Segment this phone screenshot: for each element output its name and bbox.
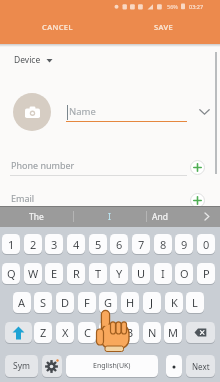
button[interactable]: The [0, 206, 73, 227]
staticText: Name [69, 105, 96, 118]
button[interactable] [190, 193, 205, 208]
button[interactable] [42, 355, 62, 377]
staticText: M [168, 325, 178, 340]
button[interactable]: 3 [45, 234, 63, 254]
button[interactable]: 5 [89, 234, 107, 254]
button[interactable] [8, 185, 188, 209]
button[interactable]: 4 [67, 234, 85, 254]
button[interactable]: Q [2, 263, 20, 284]
staticText: Next [192, 361, 210, 372]
staticText: T [95, 266, 102, 281]
button[interactable]: 7 [132, 234, 150, 254]
staticText: A [18, 295, 26, 310]
button[interactable]: E [45, 263, 63, 284]
button[interactable]: I [73, 206, 146, 227]
staticText: I [108, 211, 111, 223]
staticText: F [84, 295, 90, 310]
staticText: Phone number [11, 159, 75, 171]
staticText: 3 [51, 237, 58, 252]
staticText: And [152, 211, 168, 223]
staticText: U [137, 266, 146, 281]
button[interactable]: 6 [110, 234, 128, 254]
button[interactable]: K [165, 292, 183, 313]
button[interactable]: X [56, 322, 74, 343]
staticText: N [148, 325, 157, 340]
staticText: K [171, 295, 178, 310]
button[interactable]: And [140, 206, 180, 227]
button[interactable]: C [78, 322, 96, 343]
staticText: X [62, 325, 69, 340]
staticText: V [105, 325, 112, 340]
staticText: O [180, 266, 189, 281]
button[interactable] [194, 206, 220, 227]
staticText: E [51, 266, 58, 281]
button[interactable]: Device [14, 53, 74, 67]
button[interactable]: M [164, 322, 182, 343]
staticText: Sym [13, 360, 30, 372]
button[interactable]: Next [186, 355, 215, 377]
button[interactable] [5, 322, 32, 343]
button[interactable]: P [197, 263, 215, 284]
button[interactable]: T [89, 263, 107, 284]
button[interactable]: Z [34, 322, 52, 343]
button[interactable]: H [121, 292, 139, 313]
button[interactable]: N [143, 322, 161, 343]
staticText: W [28, 266, 39, 281]
button[interactable]: U [132, 263, 150, 284]
button[interactable]: I [154, 263, 172, 284]
button[interactable]: B [121, 322, 139, 343]
staticText: 4 [73, 237, 80, 252]
staticText: B [126, 325, 134, 340]
staticText: Device [14, 54, 41, 66]
button[interactable]: 0 [197, 234, 215, 254]
button[interactable]: G [99, 292, 117, 313]
button[interactable] [13, 93, 51, 131]
button[interactable]: 2 [24, 234, 42, 254]
button[interactable]: W [24, 263, 42, 284]
button[interactable] [60, 98, 190, 124]
staticText: Y [116, 266, 123, 281]
button[interactable]: English(UK) [66, 355, 158, 377]
staticText: 56% [167, 3, 178, 10]
staticText: 7 [138, 237, 145, 252]
staticText: 9 [181, 237, 188, 252]
staticText: G [104, 295, 113, 310]
staticText: S [40, 295, 47, 310]
button[interactable]: 8 [154, 234, 172, 254]
button[interactable]: 1 [2, 234, 20, 254]
button[interactable]: S [34, 292, 52, 313]
button[interactable] [166, 355, 182, 377]
staticText: CANCEL [42, 22, 73, 32]
button[interactable]: Sym [5, 355, 38, 377]
staticText: P [203, 266, 210, 281]
button[interactable]: J [143, 292, 161, 313]
button[interactable]: CANCEL [24, 16, 90, 38]
staticText: 6 [116, 237, 123, 252]
staticText: Email [11, 192, 35, 204]
button[interactable]: L [186, 292, 204, 313]
staticText: I [161, 266, 165, 281]
staticText: 1 [8, 237, 15, 252]
button[interactable] [190, 160, 205, 175]
button[interactable]: 9 [175, 234, 193, 254]
button[interactable]: Y [110, 263, 128, 284]
button[interactable] [196, 104, 214, 120]
button[interactable]: F [78, 292, 96, 313]
button[interactable]: V [99, 322, 117, 343]
staticText: J [150, 295, 154, 310]
staticText: Q [7, 266, 16, 281]
staticText: 03:27 [189, 3, 204, 10]
button[interactable]: SAVE [138, 16, 190, 38]
button[interactable]: D [56, 292, 74, 313]
staticText: 0 [203, 237, 210, 252]
button[interactable] [186, 322, 215, 343]
staticText: H [126, 295, 135, 310]
staticText: 5 [95, 237, 102, 252]
staticText: D [61, 295, 70, 310]
button[interactable]: R [67, 263, 85, 284]
button[interactable] [8, 152, 188, 178]
staticText: C [84, 325, 91, 340]
button[interactable]: A [13, 292, 31, 313]
staticText: L [192, 295, 198, 310]
button[interactable]: O [175, 263, 193, 284]
